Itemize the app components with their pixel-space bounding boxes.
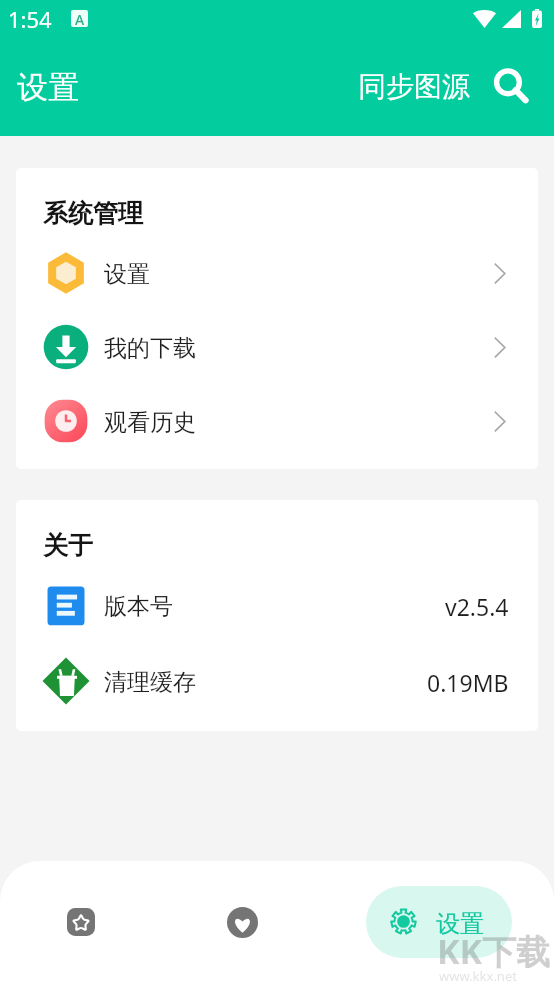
staticText: 我的下载 (104, 334, 196, 363)
staticText: www.kkx.net (439, 967, 517, 984)
staticText: 关于 (43, 530, 93, 561)
button[interactable]: Search (482, 54, 542, 114)
staticText: 设置 (104, 260, 150, 289)
button[interactable]: 设置 (366, 886, 512, 958)
button[interactable]: 我的下载 (16, 310, 538, 384)
staticText: 同步图源 (358, 69, 470, 104)
staticText: 设置 (436, 909, 484, 939)
button[interactable]: 观看历史 (16, 384, 538, 458)
staticText: 版本号 (104, 592, 173, 621)
button[interactable]: 清理缓存 (16, 644, 538, 718)
button[interactable]: 同步图源 (346, 56, 482, 116)
staticText: 1:54 (8, 4, 52, 34)
staticText: v2.5.4 (445, 591, 509, 622)
staticText: 设置 (17, 68, 79, 107)
button[interactable]: 设置 (16, 236, 538, 310)
staticText: 0.19MB (427, 667, 509, 698)
button[interactable]: 版本号 (16, 568, 538, 642)
staticText: KK下载 (437, 928, 551, 974)
staticText: 观看历史 (104, 408, 196, 437)
staticText: A (75, 10, 85, 27)
staticText: 系统管理 (43, 198, 143, 229)
staticText: 清理缓存 (104, 668, 196, 697)
button[interactable]: Bookshelf (57, 898, 105, 946)
button[interactable]: Favorites (218, 898, 266, 946)
